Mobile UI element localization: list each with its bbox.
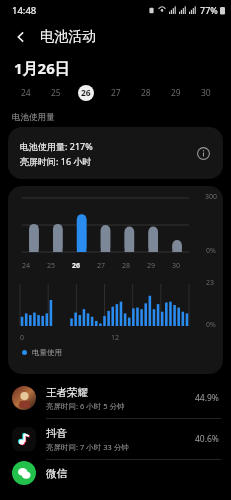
staticText: 30	[201, 87, 211, 99]
staticText: 电池使用量	[12, 112, 55, 123]
staticText: 0	[20, 333, 25, 343]
staticText: 29	[147, 261, 156, 271]
staticText: 0%	[206, 246, 216, 256]
staticText: 40.6%	[195, 433, 219, 445]
staticText: 亮屏时间: 7 小时 33 分钟	[46, 442, 129, 452]
staticText: 27	[97, 261, 106, 271]
staticText: 微信	[46, 467, 67, 480]
button[interactable]: 25	[41, 82, 71, 104]
staticText: 电池活动	[40, 28, 96, 46]
staticText: 27	[111, 87, 121, 99]
staticText: 14:48	[12, 4, 37, 17]
button[interactable]: Info	[193, 143, 213, 163]
staticText: 23	[206, 278, 215, 288]
button[interactable]: Back	[8, 24, 34, 50]
staticText: 24	[22, 261, 31, 271]
staticText: 30	[172, 261, 181, 271]
button[interactable]: 26	[71, 82, 101, 104]
staticText: 77%	[200, 4, 218, 16]
staticText: 28	[122, 261, 131, 271]
staticText: 25	[51, 87, 61, 99]
button[interactable]: 抖音	[0, 419, 231, 459]
staticText: 29	[171, 87, 181, 99]
staticText: 0%	[206, 320, 216, 330]
staticText: 26	[72, 261, 81, 271]
staticText: 28	[141, 87, 151, 99]
staticText: 亮屏时间: 6 小时 5 分钟	[46, 401, 125, 411]
staticText: 26	[81, 87, 91, 99]
staticText: 电量使用	[32, 348, 62, 357]
staticText: 亮屏时间: 16 小时	[20, 155, 92, 167]
staticText: 24	[21, 87, 31, 99]
staticText: 300	[205, 192, 218, 202]
staticText: 抖音	[46, 427, 67, 440]
staticText: 1月26日	[14, 58, 70, 78]
staticText: 12	[111, 333, 120, 343]
button[interactable]: 王者荣耀	[0, 378, 231, 418]
staticText: 王者荣耀	[46, 386, 88, 399]
button[interactable]: 微信	[0, 460, 231, 486]
button[interactable]: 30	[191, 82, 221, 104]
staticText: 44.9%	[195, 392, 219, 404]
button[interactable]: 电池使用量: 217%	[8, 127, 223, 179]
button[interactable]: 24	[10, 82, 41, 104]
staticText: 电池使用量: 217%	[20, 140, 93, 152]
button[interactable]: 27	[101, 82, 131, 104]
button[interactable]: 28	[131, 82, 161, 104]
button[interactable]: 29	[161, 82, 191, 104]
staticText: 25	[47, 261, 56, 271]
